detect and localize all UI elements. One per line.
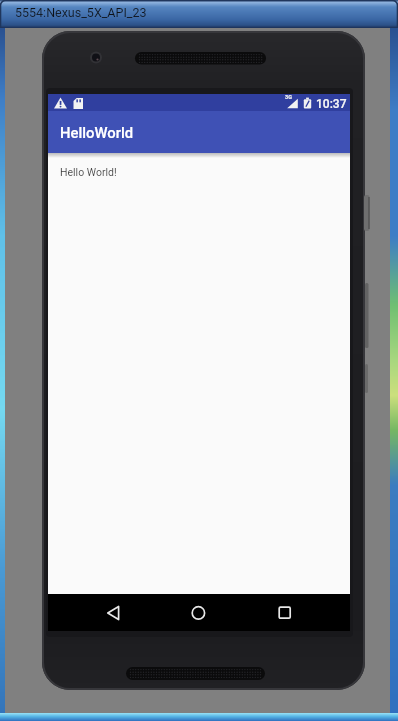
staticText: 5554:Nexus_5X_API_23 xyxy=(15,5,147,20)
button[interactable] xyxy=(264,594,304,631)
button[interactable] xyxy=(178,594,218,631)
button[interactable] xyxy=(93,594,133,631)
staticText: 3G xyxy=(285,94,292,100)
staticText: HelloWorld xyxy=(60,124,134,141)
staticText: Hello World! xyxy=(60,166,117,178)
staticText: 10:37 xyxy=(316,97,347,111)
